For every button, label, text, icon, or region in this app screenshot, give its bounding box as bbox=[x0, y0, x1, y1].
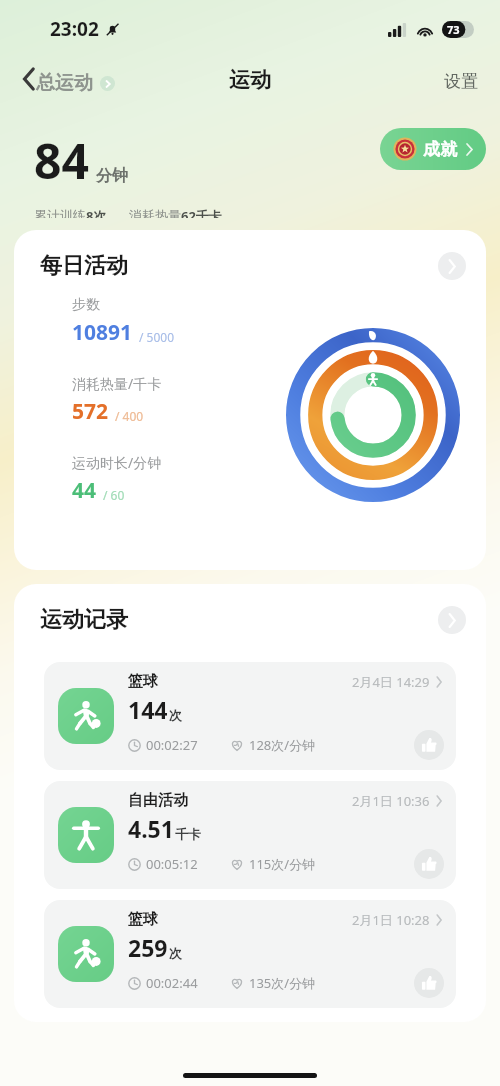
staticText: 2月4日 14:29 bbox=[352, 673, 430, 691]
staticText: 成就 bbox=[423, 139, 457, 160]
staticText: 00:02:44 bbox=[146, 974, 198, 992]
button[interactable]: 篮球 bbox=[44, 662, 456, 770]
staticText: 84 bbox=[34, 128, 89, 193]
staticText: 次 bbox=[169, 945, 182, 961]
button[interactable]: 设置 bbox=[438, 65, 484, 98]
staticText: 73 bbox=[447, 22, 460, 37]
button[interactable]: 点赞 bbox=[414, 968, 444, 998]
button[interactable]: 查看每日活动详情 bbox=[438, 252, 466, 280]
staticText: 设置 bbox=[444, 71, 478, 92]
staticText: 144 bbox=[128, 694, 168, 725]
staticText: / 60 bbox=[103, 487, 125, 503]
staticText: 572 bbox=[72, 397, 109, 426]
staticText: 千卡 bbox=[175, 826, 201, 842]
staticText: 自由活动 bbox=[128, 791, 188, 810]
button[interactable]: 篮球 bbox=[44, 900, 456, 1008]
staticText: 分钟 bbox=[96, 166, 128, 186]
staticText: 10891 bbox=[72, 318, 133, 347]
staticText: 135次/分钟 bbox=[249, 974, 316, 992]
button[interactable]: 查看全部运动记录 bbox=[438, 606, 466, 634]
button[interactable]: 每日活动 bbox=[14, 230, 486, 570]
staticText: 篮球 bbox=[128, 910, 158, 929]
staticText: 累计训练 bbox=[34, 207, 86, 218]
button[interactable]: 成就 bbox=[380, 128, 486, 170]
staticText: 23:02 bbox=[50, 16, 99, 42]
staticText: 每日活动 bbox=[40, 252, 128, 280]
staticText: 2月1日 10:28 bbox=[352, 911, 430, 929]
staticText: 128次/分钟 bbox=[249, 736, 316, 754]
staticText: / 400 bbox=[115, 408, 144, 424]
staticText: 运动时长/分钟 bbox=[72, 453, 162, 472]
staticText: 消耗热量 bbox=[129, 207, 181, 218]
staticText: 2月1日 10:36 bbox=[352, 792, 430, 810]
staticText: 次 bbox=[169, 707, 182, 723]
staticText: 62千卡 bbox=[181, 207, 222, 218]
staticText: 运动 bbox=[229, 67, 271, 93]
button[interactable]: 自由活动 bbox=[44, 781, 456, 889]
staticText: 259 bbox=[128, 932, 168, 963]
staticText: 步数 bbox=[72, 296, 100, 314]
staticText: 4.51 bbox=[128, 813, 174, 844]
button[interactable]: 总运动 bbox=[22, 69, 119, 95]
staticText: 115次/分钟 bbox=[249, 855, 316, 873]
button[interactable]: 点赞 bbox=[414, 849, 444, 879]
staticText: 消耗热量/千卡 bbox=[72, 374, 162, 393]
button[interactable]: 点赞 bbox=[414, 730, 444, 760]
staticText: 运动记录 bbox=[40, 606, 128, 634]
staticText: 篮球 bbox=[128, 672, 158, 691]
staticText: / 5000 bbox=[139, 329, 175, 345]
staticText: 44 bbox=[72, 476, 97, 505]
staticText: 总运动 bbox=[36, 71, 93, 95]
staticText: 8次 bbox=[86, 207, 107, 218]
staticText: 00:02:27 bbox=[146, 736, 198, 754]
staticText: 00:05:12 bbox=[146, 855, 198, 873]
